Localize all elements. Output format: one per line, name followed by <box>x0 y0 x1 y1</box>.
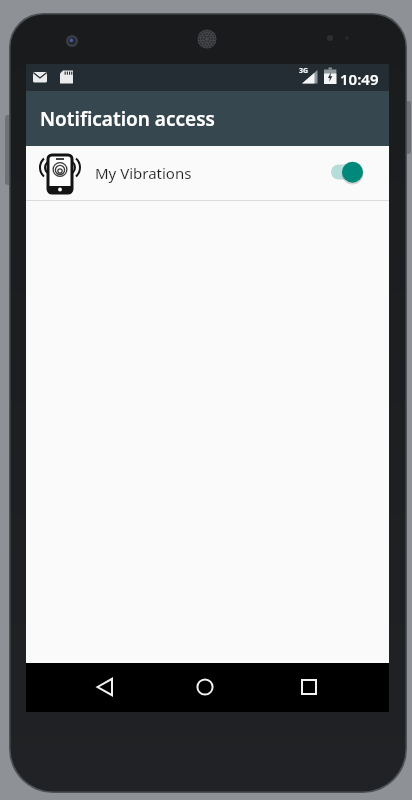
button[interactable] <box>81 663 129 711</box>
button[interactable] <box>331 160 365 186</box>
staticText: My Vibrations <box>95 163 192 183</box>
staticText: 3G <box>299 66 309 76</box>
button[interactable]: My Vibrations <box>26 146 389 200</box>
staticText: 10:49 <box>340 69 379 89</box>
button[interactable] <box>285 663 333 711</box>
staticText: Notification access <box>40 106 215 132</box>
button[interactable] <box>181 663 229 711</box>
